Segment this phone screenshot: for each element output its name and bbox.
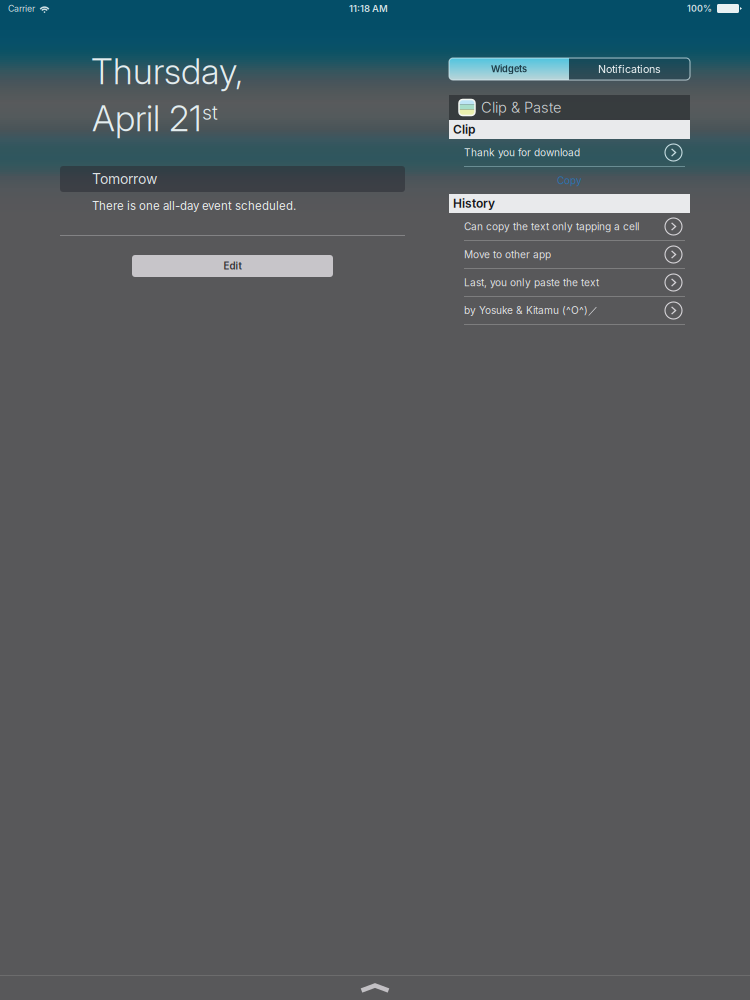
button[interactable]: Edit — [132, 255, 333, 277]
button[interactable]: Move to other app — [449, 241, 690, 269]
button[interactable]: by Yosuke & Kitamu (^O^)／ — [449, 297, 690, 325]
staticText: There is one all-day event scheduled. — [92, 199, 296, 213]
button[interactable]: Notifications — [569, 58, 690, 80]
staticText: Move to other app — [464, 248, 551, 261]
staticText: Copy — [557, 174, 582, 187]
staticText: Clip — [453, 122, 475, 137]
staticText: Last, you only paste the text — [464, 276, 599, 289]
staticText: 100% — [687, 3, 712, 14]
staticText: Widgets — [491, 63, 527, 74]
button[interactable]: Widgets — [449, 58, 569, 80]
button[interactable]: Last, you only paste the text — [449, 269, 690, 297]
staticText: 11:18 AM — [349, 3, 388, 14]
staticText: st — [202, 101, 218, 124]
staticText: Tomorrow — [92, 170, 157, 187]
staticText: Notifications — [598, 62, 661, 75]
staticText: Thank you for download — [464, 146, 580, 159]
button[interactable]: Can copy the text only tapping a cell — [449, 213, 690, 241]
staticText: Thursday, — [91, 50, 243, 93]
staticText: Carrier — [8, 3, 35, 14]
staticText: History — [453, 196, 495, 211]
staticText: by Yosuke & Kitamu (^O^)／ — [464, 304, 598, 317]
staticText: Clip & Paste — [481, 99, 562, 116]
staticText: April 21 — [92, 97, 202, 140]
staticText: Can copy the text only tapping a cell — [464, 220, 639, 233]
staticText: Edit — [223, 260, 241, 272]
button[interactable]: Thank you for download — [449, 139, 690, 167]
